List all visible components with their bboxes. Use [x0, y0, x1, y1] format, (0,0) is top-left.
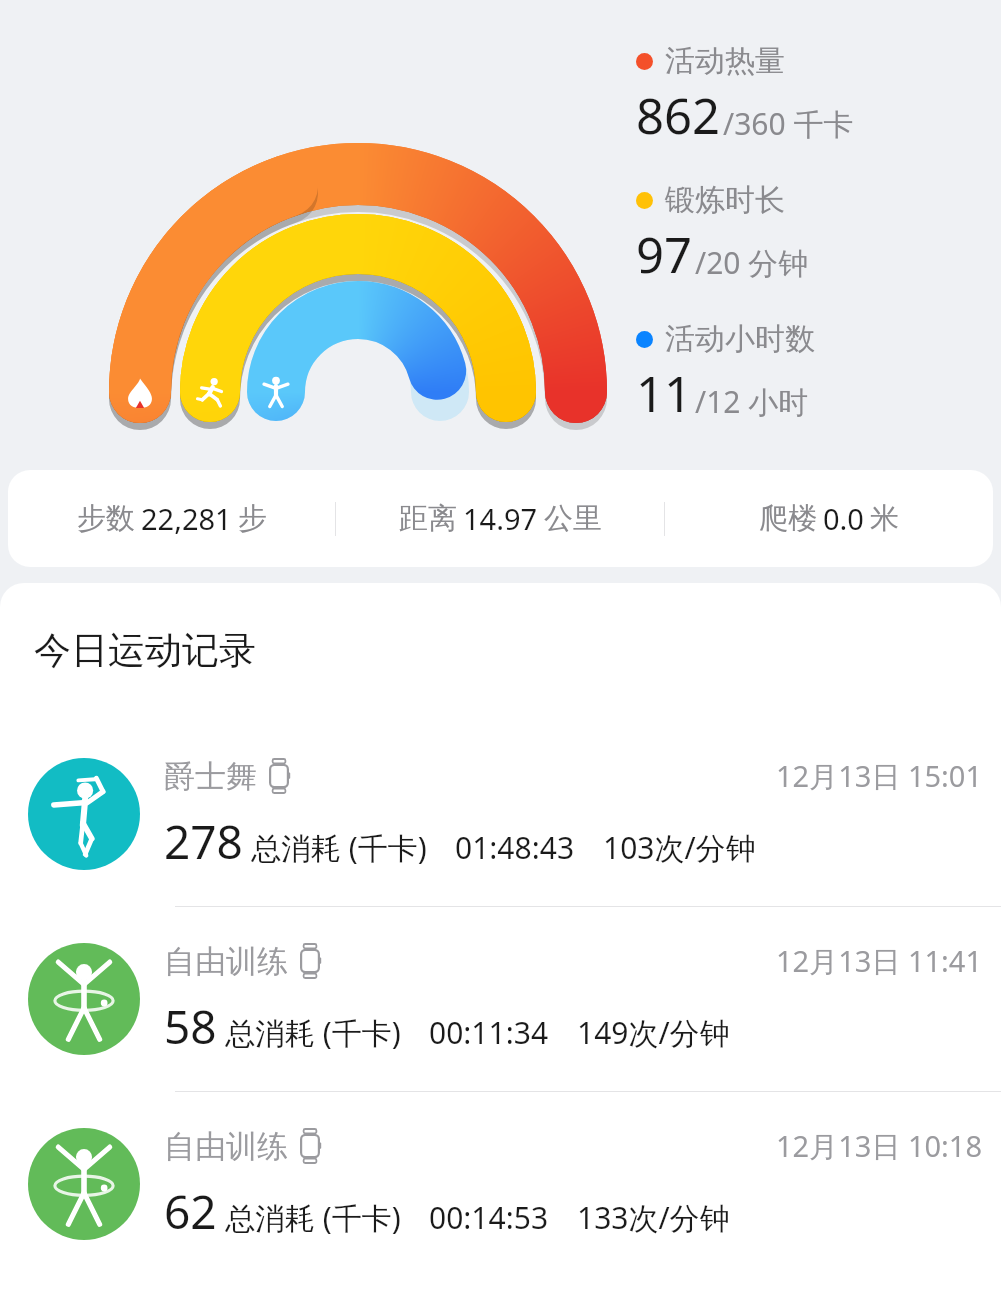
staticText: 12月13日 10:18: [776, 1126, 983, 1166]
staticText: 公里: [544, 500, 602, 537]
button[interactable]: 距离: [336, 499, 664, 538]
staticText: 58: [164, 995, 217, 1058]
staticText: 总消耗 (千卡): [225, 1197, 401, 1238]
staticText: 62: [164, 1180, 217, 1243]
staticText: 01:48:43: [455, 827, 575, 868]
staticText: 103次/分钟: [603, 827, 756, 868]
other: 自由训练: [28, 943, 140, 1055]
staticText: 距离: [399, 500, 457, 537]
staticText: 自由训练: [164, 1127, 288, 1166]
other: Recorded by watch: [300, 1129, 320, 1163]
staticText: 锻炼时长: [665, 181, 785, 219]
staticText: 00:14:53: [429, 1197, 549, 1238]
staticText: 米: [870, 500, 899, 537]
staticText: 862: [636, 82, 721, 149]
staticText: 步: [238, 500, 267, 537]
button[interactable]: 步数: [8, 470, 993, 567]
staticText: 总消耗 (千卡): [225, 1012, 401, 1053]
staticText: 12月13日 15:01: [776, 756, 983, 796]
staticText: 14.97: [463, 499, 538, 538]
staticText: 活动热量: [665, 42, 785, 80]
staticText: 爵士舞: [164, 757, 257, 796]
staticText: 97: [636, 221, 693, 288]
staticText: /12 小时: [695, 381, 809, 422]
staticText: 133次/分钟: [577, 1197, 730, 1238]
staticText: 爬楼: [759, 500, 817, 537]
button[interactable]: 爵士舞: [0, 722, 1001, 906]
staticText: 12月13日 11:41: [776, 941, 983, 981]
button[interactable]: 步数: [8, 499, 335, 538]
staticText: 自由训练: [164, 942, 288, 981]
button[interactable]: 爬楼: [665, 499, 993, 538]
staticText: 22,281: [141, 499, 232, 538]
staticText: 0.0: [823, 499, 864, 538]
staticText: 00:11:34: [429, 1012, 549, 1053]
staticText: 活动小时数: [665, 320, 815, 358]
staticText: /360 千卡: [723, 103, 854, 144]
other: Recorded by watch: [269, 759, 289, 793]
staticText: 11: [636, 360, 693, 427]
staticText: 149次/分钟: [577, 1012, 730, 1053]
other: 爵士舞: [28, 758, 140, 870]
other: 自由训练: [28, 1128, 140, 1240]
staticText: 278: [164, 810, 243, 873]
button[interactable]: 自由训练: [0, 907, 1001, 1091]
staticText: 今日运动记录: [34, 627, 256, 674]
staticText: 步数: [77, 500, 135, 537]
button[interactable]: 自由训练: [0, 1092, 1001, 1276]
staticText: 总消耗 (千卡): [251, 827, 427, 868]
staticText: /20 分钟: [695, 242, 809, 283]
other: Recorded by watch: [300, 944, 320, 978]
